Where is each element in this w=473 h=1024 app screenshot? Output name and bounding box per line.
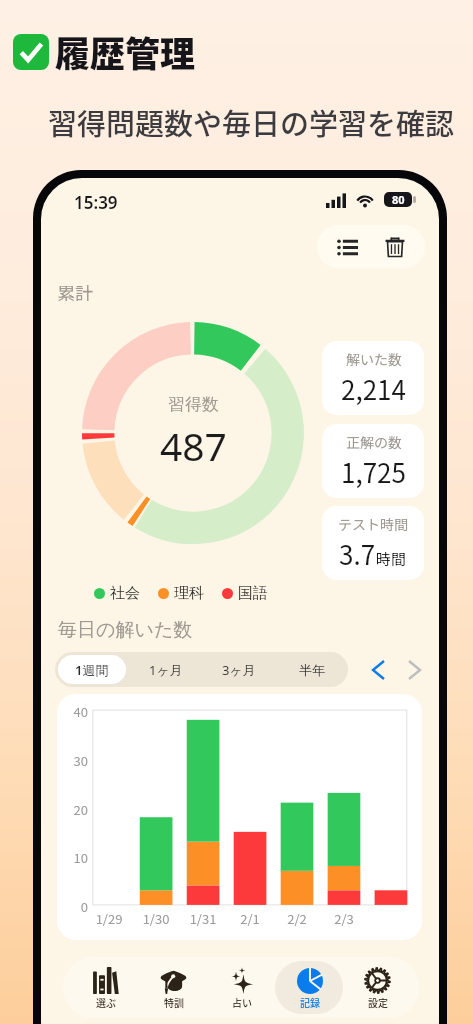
staticText: 習得数 — [168, 394, 219, 415]
staticText: 国語 — [238, 584, 268, 603]
staticText: 487 — [160, 419, 227, 472]
staticText: 記録 — [300, 995, 320, 1009]
staticText: 2/2 — [277, 909, 317, 928]
button[interactable]: 特訓 — [139, 961, 207, 1014]
staticText: 3.7 — [339, 535, 376, 573]
staticText: 半年 — [299, 662, 325, 678]
button[interactable]: 占い — [207, 961, 275, 1014]
staticText: 80 — [392, 192, 405, 207]
button[interactable]: 解いた数 — [322, 341, 424, 415]
staticText: テスト時間 — [338, 514, 408, 534]
staticText: 1/29 — [89, 909, 129, 928]
staticText: 時間 — [376, 548, 407, 570]
button[interactable]: 正解の数 — [322, 424, 424, 498]
button[interactable]: 記録 — [275, 961, 343, 1014]
staticText: 2/1 — [230, 909, 270, 928]
staticText: 1ヶ月 — [149, 661, 183, 679]
staticText: 解いた数 — [346, 349, 402, 369]
button[interactable]: テスト時間 — [322, 506, 424, 580]
staticText: 履歴管理 — [55, 26, 196, 77]
staticText: 累計 — [57, 279, 93, 305]
button[interactable]: 設定 — [343, 961, 411, 1014]
button[interactable]: 1ヶ月 — [132, 655, 199, 684]
staticText: 20 — [61, 800, 88, 819]
staticText: 習得問題数や毎日の学習を確認 — [48, 101, 455, 143]
staticText: 1週間 — [75, 661, 109, 679]
staticText: 2,214 — [341, 370, 406, 408]
button[interactable]: Previous — [364, 656, 392, 684]
staticText: 毎日の解いた数 — [58, 618, 193, 642]
staticText: 占い — [232, 995, 252, 1009]
staticText: 40 — [61, 702, 88, 721]
button[interactable]: 半年 — [278, 655, 345, 684]
staticText: 15:39 — [74, 191, 118, 214]
button[interactable]: 1週間 — [58, 655, 126, 684]
staticText: 10 — [61, 848, 88, 867]
staticText: 3ヶ月 — [222, 661, 256, 679]
staticText: 正解の数 — [346, 432, 402, 452]
staticText: 理科 — [174, 584, 204, 603]
staticText: 0 — [61, 897, 88, 916]
button[interactable]: Delete — [377, 229, 413, 265]
button[interactable]: 3ヶ月 — [205, 655, 272, 684]
staticText: 選ぶ — [96, 995, 116, 1009]
staticText: 特訓 — [164, 995, 184, 1009]
staticText: 1,725 — [341, 453, 406, 491]
staticText: 設定 — [368, 995, 388, 1009]
staticText: 30 — [61, 751, 88, 770]
staticText: 1/31 — [183, 909, 223, 928]
button[interactable]: Next — [400, 656, 428, 684]
staticText: 社会 — [110, 584, 140, 603]
button[interactable]: 選ぶ — [71, 961, 139, 1014]
button[interactable]: List — [329, 229, 365, 265]
staticText: 2/3 — [324, 909, 364, 928]
staticText: 1/30 — [136, 909, 176, 928]
